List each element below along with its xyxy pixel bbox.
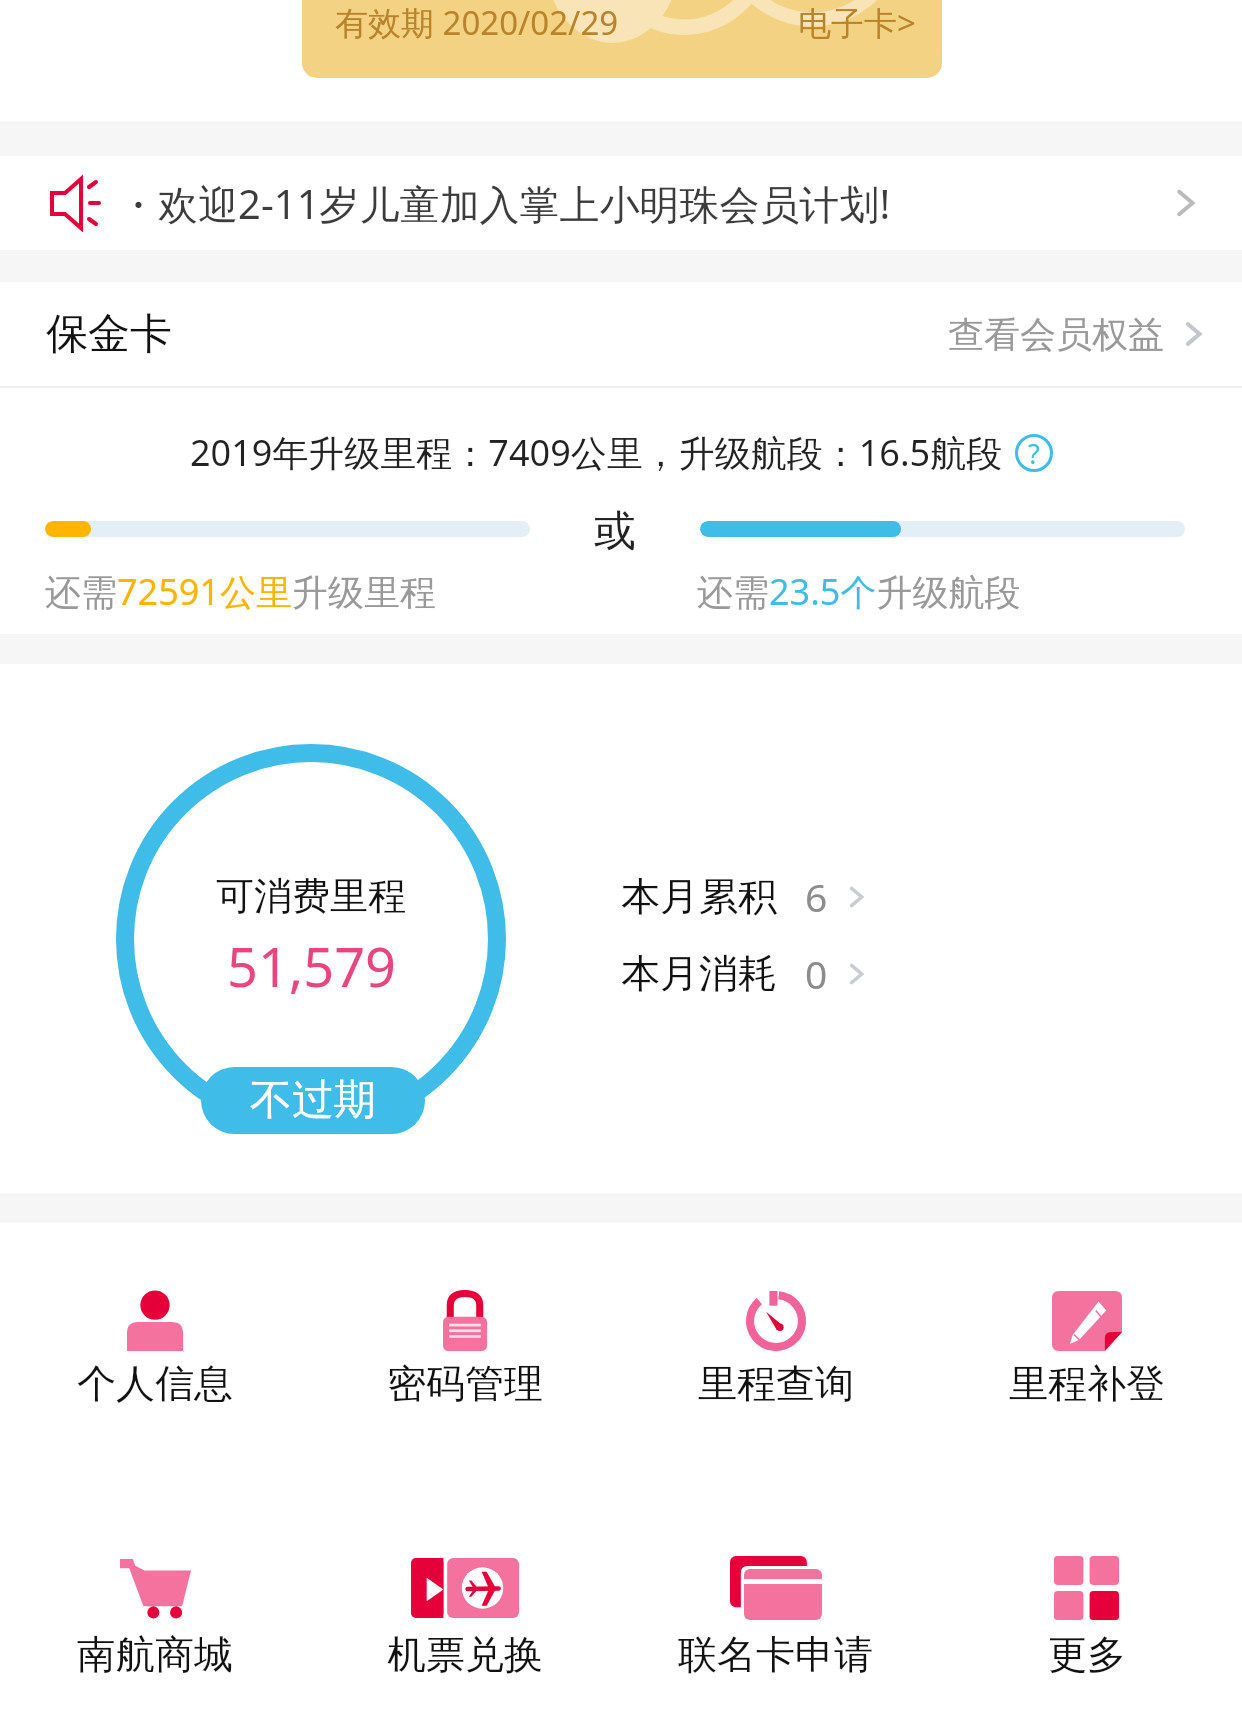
button[interactable]: 更多 xyxy=(931,1556,1242,1679)
button[interactable]: 南航商城 xyxy=(0,1556,310,1679)
staticText: 本月累积 xyxy=(621,872,777,921)
button[interactable]: 不过期 xyxy=(201,1067,425,1134)
other: More xyxy=(843,961,869,987)
staticText: 个人信息 xyxy=(77,1359,233,1408)
staticText: 还需72591公里升级里程 xyxy=(45,567,436,616)
button[interactable]: 个人信息 xyxy=(0,1289,310,1408)
other: More xyxy=(1178,319,1208,349)
button[interactable]: 联名卡申请 xyxy=(620,1556,931,1679)
staticText: 更多 xyxy=(1048,1630,1126,1679)
staticText: 或 xyxy=(594,505,636,552)
staticText: 2019年升级里程：7409公里，升级航段：16.5航段 xyxy=(190,428,1003,477)
staticText: 里程查询 xyxy=(698,1359,854,1408)
staticText: 可消费里程 xyxy=(216,872,406,920)
staticText: 有效期 2020/02/29 xyxy=(335,0,619,45)
staticText: 电子卡> xyxy=(798,0,916,45)
button[interactable]: 机票兑换 xyxy=(310,1556,620,1679)
button[interactable]: 保金卡 xyxy=(0,282,1242,386)
staticText: 机票兑换 xyxy=(387,1630,543,1679)
staticText: 里程补登 xyxy=(1009,1359,1165,1408)
staticText: 联名卡申请 xyxy=(678,1630,873,1679)
button[interactable]: 里程补登 xyxy=(931,1289,1242,1408)
button[interactable]: 密码管理 xyxy=(310,1289,620,1408)
staticText: ・欢迎2-11岁儿童加入掌上小明珠会员计划! xyxy=(118,176,891,231)
other: Announcement xyxy=(50,178,100,228)
other: More xyxy=(1168,186,1202,220)
other: More xyxy=(843,884,869,910)
staticText: 不过期 xyxy=(250,1074,376,1127)
staticText: 6 xyxy=(805,870,828,923)
staticText: 密码管理 xyxy=(387,1359,543,1408)
staticText: 南航商城 xyxy=(77,1630,233,1679)
staticText: 0 xyxy=(805,947,828,1000)
staticText: 查看会员权益 xyxy=(948,312,1164,357)
button[interactable]: Help xyxy=(1015,434,1053,472)
button[interactable]: Announcement xyxy=(0,156,1242,250)
staticText: 本月消耗 xyxy=(621,949,777,998)
button[interactable]: 本月累积 xyxy=(621,862,869,931)
staticText: 保金卡 xyxy=(46,308,172,361)
button[interactable]: 本月消耗 xyxy=(621,939,869,1008)
button[interactable]: 有效期 2020/02/29 xyxy=(302,0,942,78)
staticText: 51,579 xyxy=(227,929,396,1003)
staticText: ? xyxy=(1028,435,1040,472)
button[interactable]: 里程查询 xyxy=(620,1289,931,1408)
staticText: 还需23.5个升级航段 xyxy=(697,567,1021,616)
